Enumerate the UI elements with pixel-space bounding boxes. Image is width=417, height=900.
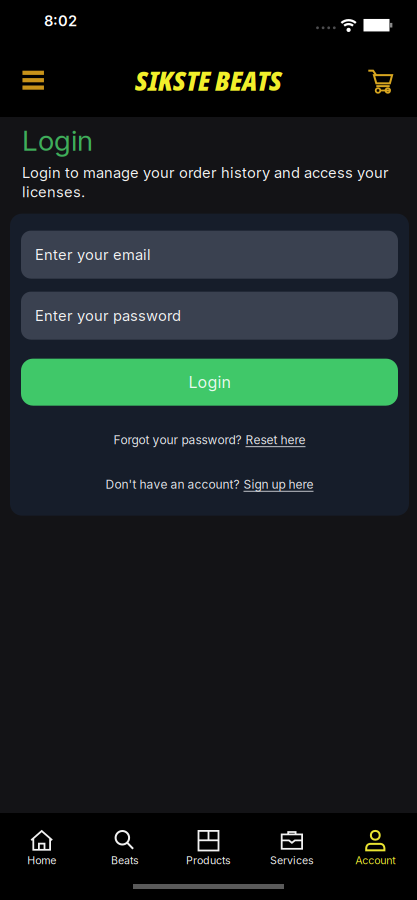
button[interactable]: Sign up here	[243, 477, 313, 492]
button[interactable]: Enter your email	[21, 231, 398, 279]
button[interactable]: Products	[167, 813, 250, 900]
staticText: Forgot your password?	[113, 433, 241, 447]
staticText: Login	[188, 373, 230, 392]
staticText: Reset here	[245, 433, 305, 447]
button[interactable]: Login	[21, 359, 398, 406]
staticText: Login to manage your order history and a…	[22, 164, 389, 201]
staticText: Enter your email	[35, 246, 151, 263]
staticText: Home	[27, 854, 56, 867]
button[interactable]: Services	[250, 813, 334, 900]
button[interactable]: Menu	[22, 71, 44, 90]
button[interactable]: Enter your password	[21, 292, 398, 340]
button[interactable]: Account	[334, 813, 417, 900]
staticText: Account	[355, 854, 395, 867]
staticText: Beats	[111, 854, 139, 867]
staticText: Login	[22, 124, 93, 157]
staticText: Don't have an account?	[105, 477, 239, 492]
staticText: 8:02	[44, 12, 77, 30]
button[interactable]: Home	[0, 813, 83, 900]
button[interactable]: Reset here	[245, 433, 305, 447]
staticText: SIKSTE BEATS	[135, 62, 282, 99]
staticText: Products	[186, 854, 231, 867]
staticText: Services	[270, 854, 314, 867]
staticText: Sign up here	[243, 477, 313, 492]
staticText: Enter your password	[35, 307, 181, 324]
button[interactable]: Cart	[367, 69, 394, 93]
button[interactable]: Beats	[83, 813, 167, 900]
